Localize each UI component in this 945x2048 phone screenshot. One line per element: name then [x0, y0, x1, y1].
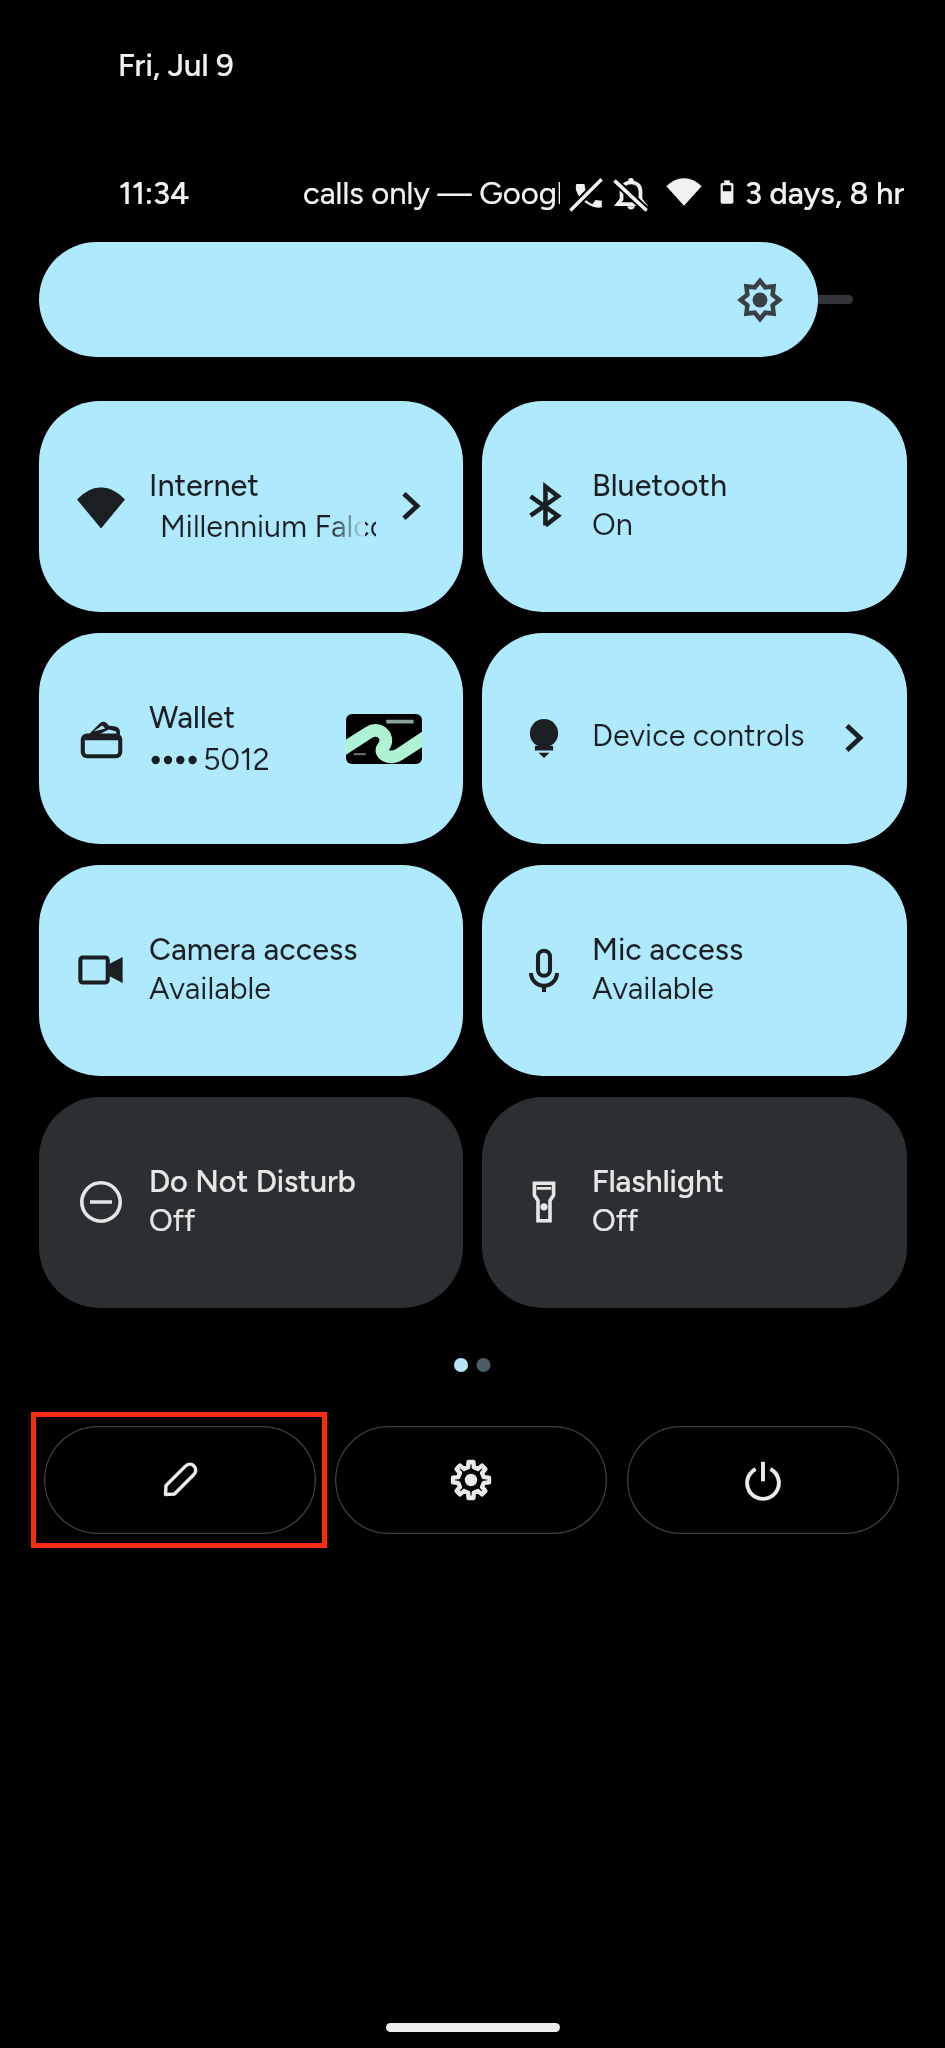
- button[interactable]: Device controls: [482, 633, 907, 844]
- button[interactable]: Camera access: [39, 865, 463, 1076]
- staticText: Wallet: [149, 699, 236, 736]
- staticText: Off: [592, 1202, 639, 1239]
- button[interactable]: Mic access: [482, 865, 907, 1076]
- staticText: 3 days, 8 hr: [745, 175, 905, 212]
- button[interactable]: Do Not Disturb: [39, 1097, 463, 1308]
- staticText: On: [592, 506, 633, 543]
- staticText: Flashlight: [592, 1163, 724, 1200]
- staticText: Available: [149, 970, 271, 1007]
- staticText: Fri, Jul 9: [118, 47, 234, 84]
- staticText: Mic access: [592, 931, 744, 968]
- button[interactable]: Power: [627, 1426, 899, 1534]
- button[interactable]: Flashlight: [482, 1097, 907, 1308]
- staticText: Internet: [149, 467, 260, 504]
- button[interactable]: Internet: [39, 401, 463, 612]
- staticText: Off: [149, 1202, 196, 1239]
- staticText: Device controls: [592, 717, 805, 754]
- button[interactable]: Edit: [44, 1426, 316, 1534]
- staticText: Available: [592, 970, 714, 1007]
- staticText: 11:34: [119, 175, 190, 212]
- button[interactable]: Brightness: [39, 242, 818, 357]
- staticText: Millennium Falcon: [160, 508, 376, 545]
- staticText: Do Not Disturb: [149, 1163, 356, 1200]
- button[interactable]: Bluetooth: [482, 401, 907, 612]
- staticText: calls only — Google: [303, 175, 560, 212]
- button[interactable]: Wallet: [39, 633, 463, 844]
- staticText: Camera access: [149, 931, 358, 968]
- button[interactable]: Settings: [335, 1426, 607, 1534]
- staticText: 5012: [203, 741, 270, 778]
- staticText: Bluetooth: [592, 467, 728, 504]
